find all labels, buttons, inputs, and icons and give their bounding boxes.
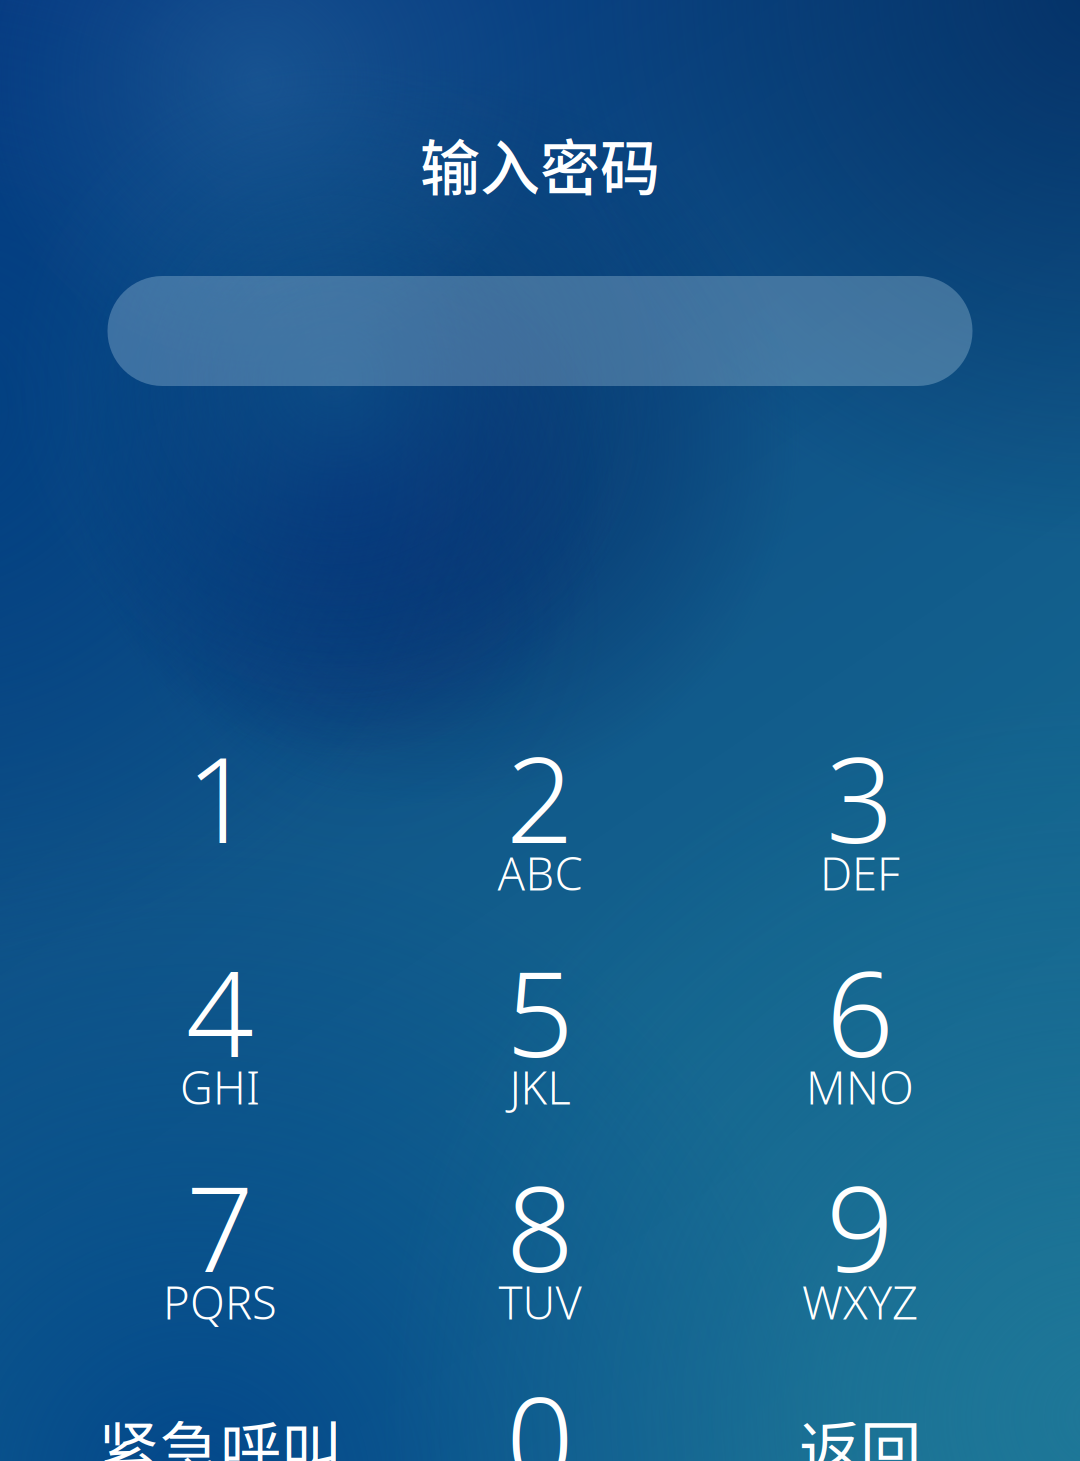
button[interactable]: 6 <box>700 906 1020 1120</box>
staticText: 6 <box>826 930 894 1092</box>
button[interactable]: 7 <box>60 1121 380 1335</box>
button[interactable]: 返回 <box>700 1339 1020 1461</box>
button[interactable]: 8 <box>380 1121 700 1335</box>
staticText: JKL <box>509 1056 570 1118</box>
button[interactable]: 1 <box>60 692 380 906</box>
staticText: ABC <box>497 842 582 904</box>
staticText: 输入密码 <box>420 121 660 207</box>
staticText: 紧急呼叫 <box>98 1402 342 1461</box>
button[interactable]: 3 <box>700 692 1020 906</box>
staticText: GHI <box>180 1056 260 1118</box>
staticText: 4 <box>186 930 254 1092</box>
staticText: 9 <box>826 1145 894 1307</box>
staticText: 0 <box>506 1356 574 1461</box>
staticText: 3 <box>826 716 894 878</box>
staticText: 8 <box>506 1145 574 1307</box>
button[interactable]: 4 <box>60 906 380 1120</box>
staticText: MNO <box>806 1056 914 1118</box>
staticText: DEF <box>820 842 900 904</box>
staticText: TUV <box>498 1271 581 1333</box>
staticText: 5 <box>506 930 574 1092</box>
button[interactable]: 5 <box>380 906 700 1120</box>
button[interactable]: 2 <box>380 692 700 906</box>
button[interactable]: 紧急呼叫 <box>60 1339 380 1461</box>
staticText: 返回 <box>799 1402 921 1461</box>
staticText: WXYZ <box>802 1271 918 1333</box>
button[interactable]: 9 <box>700 1121 1020 1335</box>
staticText: 1 <box>186 716 254 878</box>
staticText: PQRS <box>163 1271 277 1333</box>
button[interactable]: 0 <box>380 1332 700 1461</box>
staticText: 2 <box>506 716 574 878</box>
staticText: 7 <box>186 1145 254 1307</box>
